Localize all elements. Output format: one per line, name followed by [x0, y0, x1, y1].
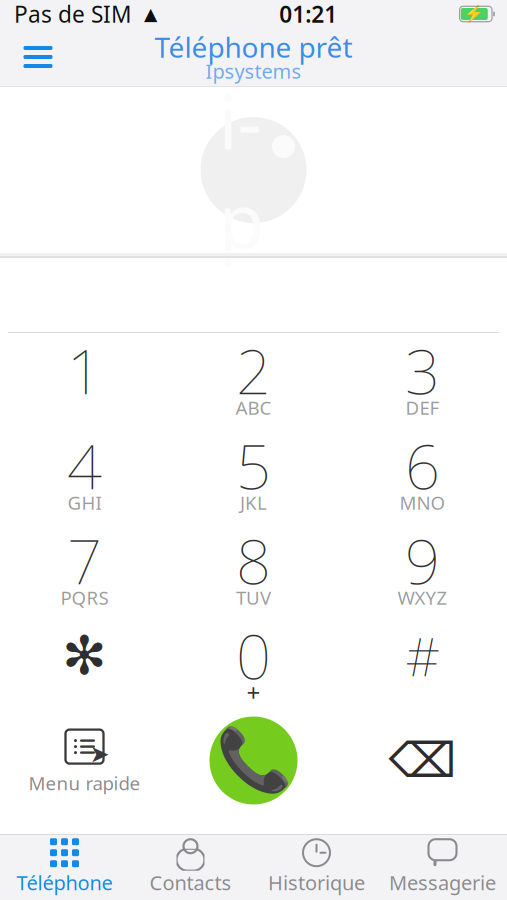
staticText: Messagerie	[389, 869, 496, 896]
button[interactable]: 6	[338, 428, 507, 523]
staticText: Téléphone	[16, 869, 112, 896]
button[interactable]: 7	[0, 523, 169, 618]
staticText: 01:21	[279, 0, 337, 29]
staticText: PQRS	[60, 585, 108, 610]
button[interactable]: Appeler	[169, 713, 338, 808]
button[interactable]: 1	[0, 333, 169, 428]
staticText: Menu rapide	[28, 771, 140, 795]
staticText: JKL	[240, 490, 267, 515]
staticText: ➤	[89, 740, 109, 768]
staticText: 2	[236, 330, 271, 411]
button[interactable]: Téléphone	[1, 835, 127, 899]
staticText: 6	[405, 425, 440, 506]
button[interactable]: 9	[338, 523, 507, 618]
button[interactable]: Messagerie	[379, 835, 505, 899]
staticText: 0	[236, 615, 271, 696]
staticText: 1	[67, 330, 102, 411]
staticText: 4	[67, 425, 102, 506]
staticText: ✻	[62, 625, 107, 686]
button[interactable]: Menu	[7, 33, 69, 81]
staticText: ▲	[132, 4, 157, 24]
staticText: DEF	[405, 395, 439, 420]
staticText: ip	[218, 71, 264, 269]
button[interactable]: #	[338, 618, 507, 713]
staticText: #	[405, 620, 439, 691]
button[interactable]: 2	[169, 333, 338, 428]
staticText: 5	[236, 425, 271, 506]
staticText: 9	[405, 520, 440, 601]
button[interactable]: 4	[0, 428, 169, 523]
staticText: Ipsystems	[205, 58, 301, 84]
staticText: 7	[67, 520, 102, 601]
staticText: GHI	[67, 490, 101, 515]
staticText: Historique	[268, 869, 365, 896]
staticText: +	[246, 677, 260, 708]
staticText: Pas de SIM	[14, 0, 132, 29]
button[interactable]: 0	[169, 618, 338, 713]
staticText: 3	[405, 330, 440, 411]
button[interactable]: 8	[169, 523, 338, 618]
staticText: ABC	[235, 395, 271, 420]
staticText: TUV	[236, 585, 271, 610]
button[interactable]: 3	[338, 333, 507, 428]
button[interactable]: Contacts	[127, 835, 253, 899]
button[interactable]: Historique	[253, 835, 379, 899]
staticText: ⌫	[388, 733, 456, 788]
staticText: MNO	[399, 490, 445, 515]
button[interactable]: ➤	[0, 713, 169, 808]
staticText: Téléphone prêt	[154, 28, 352, 66]
staticText: ⚡	[464, 5, 484, 23]
staticText: Contacts	[149, 869, 231, 896]
button[interactable]: 5	[169, 428, 338, 523]
staticText: 📞	[215, 725, 291, 796]
staticText: 8	[236, 520, 271, 601]
button[interactable]: Supprimer	[338, 713, 507, 808]
button[interactable]: ✻	[0, 618, 169, 713]
staticText: WXYZ	[397, 585, 447, 610]
